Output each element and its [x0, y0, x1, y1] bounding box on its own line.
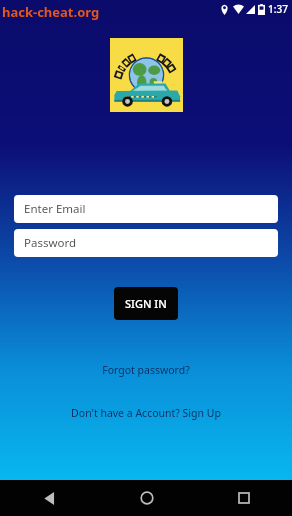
staticText: Forgot password?: [102, 363, 190, 377]
staticText: Password: [24, 235, 77, 251]
button[interactable]: Forgot password?: [96, 361, 196, 379]
staticText: 1:37: [268, 2, 288, 16]
button[interactable]: Password: [14, 229, 278, 257]
staticText: hack-cheat.org: [2, 3, 100, 21]
staticText: Don't have a Account? Sign Up: [71, 406, 221, 420]
button[interactable]: Recent apps: [195, 480, 292, 516]
button[interactable]: Enter Email: [14, 195, 278, 223]
staticText: Enter Email: [24, 201, 86, 217]
button[interactable]: SIGN IN: [114, 287, 178, 320]
button[interactable]: Don't have a Account? Sign Up: [65, 404, 227, 422]
staticText: SIGN IN: [125, 296, 167, 311]
button[interactable]: Home: [98, 480, 195, 516]
button[interactable]: Back: [0, 480, 98, 516]
